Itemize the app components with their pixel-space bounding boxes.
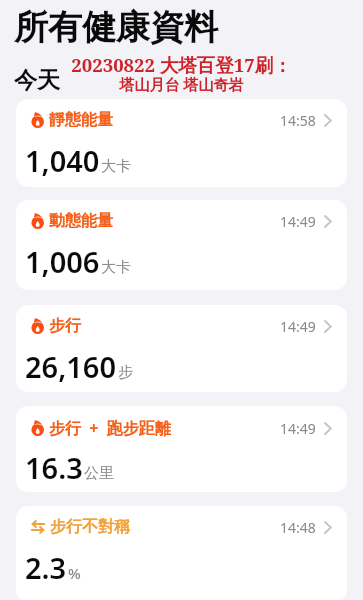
staticText: 20230822 大塔百登17刷： (0, 52, 363, 77)
staticText: 26,160 (25, 347, 117, 386)
staticText: 動態能量 (49, 211, 113, 231)
staticText: % (68, 563, 81, 583)
staticText: 14:58 (280, 111, 316, 130)
button[interactable]: 靜態能量 (16, 99, 347, 187)
staticText: 步行 (49, 316, 81, 336)
staticText: 14:49 (280, 212, 316, 231)
staticText: 2.3 (25, 548, 67, 587)
button[interactable]: 動態能量 (16, 200, 347, 290)
staticText: 大卡 (101, 157, 131, 176)
button[interactable]: 步行 (16, 305, 347, 392)
staticText: 14:49 (280, 419, 316, 438)
staticText: 今天 (14, 66, 60, 95)
staticText: 大卡 (101, 258, 131, 277)
staticText: 靜態能量 (49, 110, 113, 130)
button[interactable]: 步行 + 跑步距離 (16, 406, 347, 492)
staticText: 14:48 (280, 518, 316, 537)
staticText: 公里 (84, 464, 114, 483)
staticText: 1,006 (25, 242, 100, 281)
staticText: 16.3 (25, 448, 83, 487)
button[interactable]: 步行不對稱 (16, 506, 347, 600)
staticText: 所有健康資料 (14, 6, 218, 49)
staticText: 步行 + 跑步距離 (49, 417, 171, 439)
staticText: 14:49 (280, 317, 316, 336)
staticText: 塔山月台 塔山奇岩 (0, 74, 363, 94)
staticText: 步 (118, 363, 133, 382)
staticText: 1,040 (25, 141, 100, 180)
staticText: 步行不對稱 (50, 517, 130, 537)
